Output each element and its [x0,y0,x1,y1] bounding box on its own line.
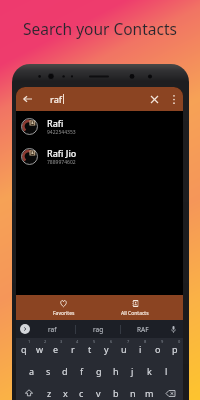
button[interactable]: j [124,360,141,382]
staticText: Favorites [53,310,75,317]
button[interactable]: o [149,338,166,360]
button[interactable]: c [73,382,90,400]
staticText: 9 [161,339,164,344]
button[interactable]: z [41,382,57,400]
staticText: 3 [60,339,63,344]
staticText: x [63,387,68,399]
staticText: u [121,343,127,355]
staticText: q [21,343,27,355]
staticText: raf [50,93,62,105]
staticText: p [172,343,178,355]
staticText: 7889974602 [47,159,76,166]
staticText: k [147,365,152,377]
button[interactable]: Voice input [165,320,181,338]
staticText: b [113,387,119,399]
button[interactable]: l [158,360,175,382]
button[interactable]: v [90,382,107,400]
button[interactable]: n [124,382,141,400]
button[interactable]: s [40,360,56,382]
button[interactable]: p [166,338,183,360]
staticText: l [165,365,168,377]
button[interactable]: e [48,338,64,360]
button[interactable]: t [81,338,98,360]
staticText: m [145,387,154,399]
button[interactable]: w [32,338,48,360]
staticText: 2 [44,339,47,344]
staticText: 7 [127,339,130,344]
staticText: 0 [178,339,181,344]
staticText: Rafi [47,117,64,129]
button[interactable]: h [107,360,124,382]
button[interactable]: a [24,360,40,382]
button[interactable]: f [73,360,90,382]
staticText: 9422544353 [47,129,76,136]
staticText: RAF [137,325,149,334]
staticText: d [62,365,68,377]
button[interactable]: RAF [121,320,165,338]
staticText: g [96,365,102,377]
button[interactable]: Back [20,92,34,106]
staticText: All Contacts [121,310,149,317]
staticText: n [130,387,136,399]
button[interactable]: More suggestions [20,324,30,334]
staticText: h [113,365,119,377]
button[interactable]: raf [30,320,75,338]
button[interactable]: q [16,338,32,360]
button[interactable]: Shift [16,382,41,400]
staticText: 6 [110,339,113,344]
button[interactable]: All Contacts [99,295,171,320]
staticText: c [79,387,84,399]
staticText: z [47,387,52,399]
staticText: t [88,343,92,355]
staticText: e [53,343,59,355]
button[interactable]: k [141,360,158,382]
staticText: o [155,343,161,355]
button[interactable]: Backspace [158,382,183,400]
button[interactable]: u [115,338,132,360]
staticText: raf [48,325,57,334]
staticText: r [71,343,75,355]
staticText: i [139,343,142,355]
staticText: Rafi Jio [47,147,77,159]
button[interactable]: x [57,382,73,400]
button[interactable]: Clear search [147,92,162,107]
staticText: y [104,343,109,355]
button[interactable]: g [90,360,107,382]
staticText: v [96,387,101,399]
staticText: 4 [76,339,79,344]
button[interactable]: d [56,360,73,382]
button[interactable]: r [64,338,81,360]
button[interactable]: b [107,382,124,400]
button[interactable]: y [98,338,115,360]
staticText: 1 [28,339,31,344]
staticText: s [46,365,51,377]
staticText: f [80,365,84,377]
button[interactable]: Favorites [28,295,99,320]
staticText: rag [93,325,104,334]
staticText: Search your Contacts [0,18,200,39]
button[interactable]: Rafi Jio [16,141,183,171]
button[interactable]: m [141,382,158,400]
staticText: a [29,365,35,377]
button[interactable]: i [132,338,149,360]
staticText: 8 [144,339,147,344]
button[interactable]: More options [166,92,181,107]
staticText: j [131,365,134,377]
button[interactable]: rag [76,320,120,338]
staticText: w [36,343,44,355]
button[interactable]: Rafi [16,111,183,141]
staticText: 5 [93,339,96,344]
